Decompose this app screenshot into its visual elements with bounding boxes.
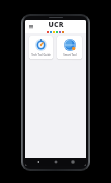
button[interactable]: Tech Tool Guide (29, 36, 53, 59)
button[interactable]: Smart Tool (57, 36, 82, 59)
staticText: Smart Tool (63, 53, 77, 57)
button[interactable]: Back (33, 158, 43, 166)
staticText: UCR (48, 20, 64, 30)
button[interactable]: Recent apps (68, 158, 78, 166)
staticText: Tech Tool Guide (31, 53, 51, 57)
button[interactable]: Open navigation menu (27, 23, 34, 30)
button[interactable]: Home (51, 158, 61, 166)
